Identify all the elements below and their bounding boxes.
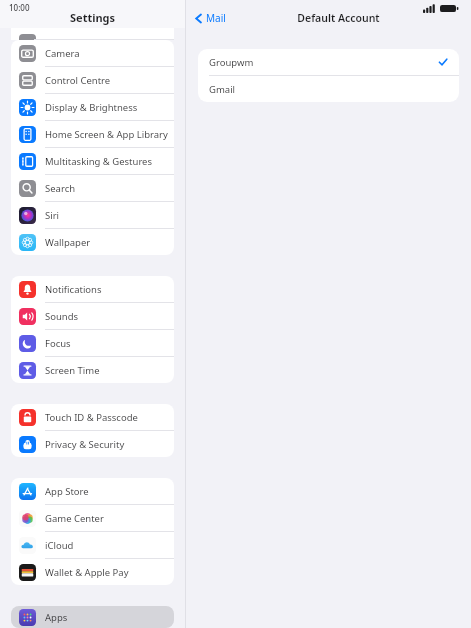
staticText: Notifications	[45, 283, 102, 296]
staticText: Privacy & Security	[45, 438, 125, 451]
staticText: Gmail	[209, 83, 236, 96]
staticText: Home Screen & App Library	[45, 128, 168, 141]
button[interactable]: Search	[11, 175, 174, 201]
button[interactable]: Apps	[11, 606, 174, 628]
button[interactable]: iCloud	[11, 532, 174, 558]
staticText: App Store	[45, 485, 89, 498]
button[interactable]: Touch ID & Passcode	[11, 404, 174, 430]
button[interactable]: Display & Brightness	[11, 94, 174, 120]
button[interactable]: Game Center	[11, 505, 174, 531]
button[interactable]: Back to Mail	[195, 11, 226, 25]
staticText: Control Centre	[45, 74, 111, 87]
staticText: Wallpaper	[45, 236, 91, 249]
staticText: Multitasking & Gestures	[45, 155, 153, 168]
staticText: Wallet & Apple Pay	[45, 566, 129, 579]
staticText: Touch ID & Passcode	[45, 411, 138, 424]
button[interactable]: Control Centre	[11, 67, 174, 93]
staticText: Display & Brightness	[45, 101, 138, 114]
button[interactable]: Siri	[11, 202, 174, 228]
staticText: Sounds	[45, 310, 79, 323]
staticText: Screen Time	[45, 364, 100, 377]
staticText: Camera	[45, 47, 80, 60]
button[interactable]: Wallpaper	[11, 229, 174, 255]
staticText: Siri	[45, 209, 60, 222]
button[interactable]: Privacy & Security	[11, 431, 174, 457]
staticText: Groupwm	[209, 56, 254, 69]
button[interactable]: Sounds	[11, 303, 174, 329]
staticText: Search	[45, 182, 76, 195]
button[interactable]: Groupwm	[198, 49, 459, 75]
staticText: Apps	[45, 611, 68, 624]
button[interactable]: Multitasking & Gestures	[11, 148, 174, 174]
button[interactable]: App Store	[11, 478, 174, 504]
button[interactable]: Home Screen & App Library	[11, 121, 174, 147]
staticText: Focus	[45, 337, 71, 350]
staticText: 10:00	[9, 2, 30, 13]
staticText: iCloud	[45, 539, 74, 552]
staticText: Game Center	[45, 512, 104, 525]
button[interactable]: Focus	[11, 330, 174, 356]
staticText: Default Account	[297, 11, 380, 25]
button[interactable]: Wallet & Apple Pay	[11, 559, 174, 585]
button[interactable]: Camera	[11, 40, 174, 66]
button[interactable]: Screen Time	[11, 357, 174, 383]
other: Back to Mail	[195, 13, 202, 24]
staticText: Mail	[206, 11, 226, 25]
staticText: Settings	[70, 10, 116, 25]
button[interactable]: Notifications	[11, 276, 174, 302]
button[interactable]: Gmail	[198, 76, 459, 102]
other: Selected	[438, 57, 448, 67]
